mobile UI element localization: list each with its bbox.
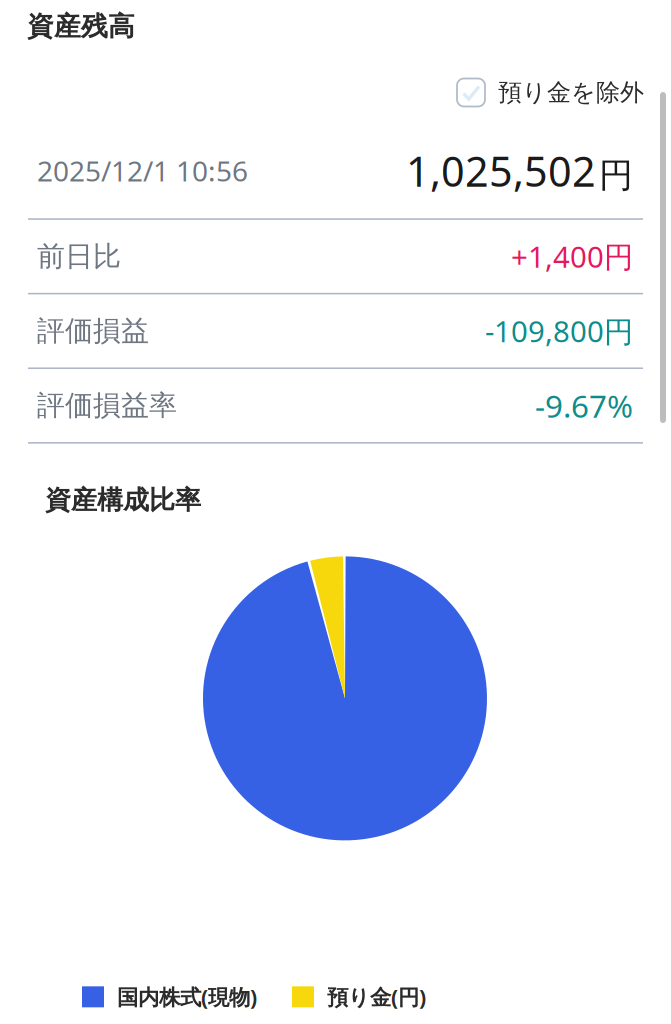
staticText: 預り金を除外 bbox=[498, 78, 644, 107]
staticText: 1,025,502 bbox=[406, 143, 596, 198]
staticText: 2025/12/1 10:56 bbox=[37, 152, 248, 189]
staticText: +1,400円 bbox=[511, 237, 633, 276]
staticText: 国内株式(現物) bbox=[117, 983, 257, 1011]
staticText: 円 bbox=[599, 154, 633, 197]
staticText: 資産構成比率 bbox=[45, 484, 201, 516]
staticText: -9.67% bbox=[535, 384, 633, 427]
staticText: 前日比 bbox=[37, 239, 121, 273]
staticText: 評価損益率 bbox=[37, 388, 177, 423]
staticText: 評価損益 bbox=[37, 314, 149, 348]
staticText: 預り金(円) bbox=[327, 983, 426, 1011]
staticText: 資産残高 bbox=[27, 10, 135, 43]
staticText: -109,800円 bbox=[485, 311, 633, 350]
button[interactable]: 預り金を除外 bbox=[457, 78, 644, 107]
